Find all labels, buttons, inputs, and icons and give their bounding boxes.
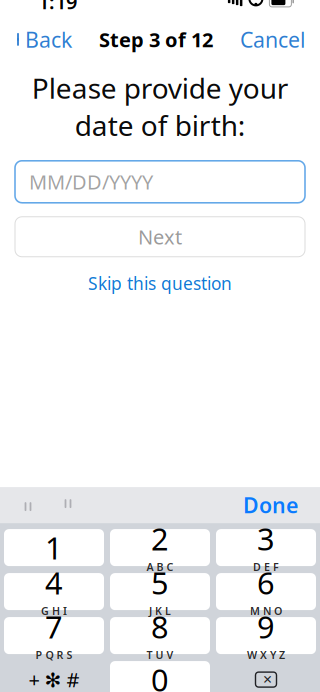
button[interactable]: 0: [110, 661, 210, 692]
staticText: Back: [25, 25, 72, 53]
staticText: M N O: [250, 604, 282, 618]
staticText: Done: [243, 491, 298, 519]
button[interactable]: 1: [4, 529, 104, 566]
button[interactable]: 2: [110, 529, 210, 566]
button[interactable]: Skip this question: [78, 266, 242, 301]
staticText: T U V: [146, 648, 173, 662]
staticText: Please provide your date of birth:: [31, 69, 288, 144]
button[interactable]: 6: [216, 573, 316, 610]
staticText: Next: [138, 223, 182, 250]
button[interactable]: Previous field: [8, 487, 48, 523]
button[interactable]: 9: [216, 617, 316, 654]
staticText: 4: [45, 562, 63, 603]
staticText: 7: [45, 606, 63, 647]
staticText: 1:19: [38, 0, 77, 15]
staticText: 3: [257, 518, 275, 559]
button[interactable]: 4: [4, 573, 104, 610]
staticText: 5: [151, 562, 169, 603]
button[interactable]: 8: [110, 617, 210, 654]
staticText: 2: [151, 518, 169, 559]
button[interactable]: Delete: [216, 661, 316, 692]
button[interactable]: Next field: [48, 487, 88, 523]
staticText: J K L: [149, 604, 171, 618]
staticText: Cancel: [240, 25, 306, 53]
button[interactable]: Cancel: [226, 21, 320, 57]
staticText: A B C: [146, 560, 173, 574]
staticText: 1: [45, 527, 63, 568]
staticText: 9: [257, 606, 275, 647]
staticText: MM/DD/YYYY: [29, 168, 153, 195]
staticText: D E F: [253, 560, 279, 574]
staticText: Step 3 of 12: [99, 26, 213, 53]
button[interactable]: 3: [216, 529, 316, 566]
button[interactable]: Back: [0, 21, 86, 57]
staticText: W X Y Z: [247, 648, 285, 662]
staticText: G H I: [41, 604, 67, 618]
staticText: + ✻ #: [28, 666, 79, 692]
staticText: 6: [257, 562, 275, 603]
button[interactable]: 5: [110, 573, 210, 610]
button[interactable]: Plus, star, pound: [4, 661, 104, 692]
staticText: ✕: [262, 673, 272, 686]
staticText: P Q R S: [35, 648, 72, 662]
staticText: Skip this question: [88, 272, 232, 295]
button[interactable]: Next: [15, 217, 305, 257]
staticText: 0: [151, 659, 169, 692]
staticText: 8: [151, 606, 169, 647]
button[interactable]: Done: [227, 487, 314, 523]
button[interactable]: 7: [4, 617, 104, 654]
